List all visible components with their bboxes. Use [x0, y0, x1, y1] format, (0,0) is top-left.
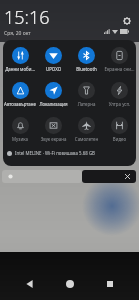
staticText: Intel MELINE · Wi-Fi повишава 5.68 GB	[15, 150, 95, 156]
staticText: Латерна	[71, 101, 102, 107]
button[interactable]: Музика	[3, 117, 37, 147]
button[interactable]: Екранна снимка	[103, 47, 136, 77]
button[interactable]: Close	[82, 170, 136, 183]
staticText: Автозавъртане	[4, 101, 36, 107]
button[interactable]: Recents	[98, 272, 122, 296]
button[interactable]: Локализация	[37, 82, 70, 112]
staticText: Музика	[4, 136, 36, 142]
staticText: Локализация	[38, 101, 69, 107]
staticText: Самолетен	[71, 136, 102, 142]
staticText: Bluetooth	[71, 66, 102, 72]
staticText: Екранна снимка	[104, 66, 135, 72]
button[interactable]: Settings	[120, 14, 134, 28]
staticText: 15:16	[4, 5, 50, 30]
button[interactable]: Home	[58, 272, 82, 296]
button[interactable]: UPOXO	[37, 47, 70, 77]
button[interactable]: Данни мобилни	[3, 47, 37, 77]
staticText: Видео	[104, 136, 135, 142]
staticText: Звук екрана	[38, 136, 69, 142]
button[interactable]: Видео	[103, 117, 136, 147]
button[interactable]: Автозавъртане	[3, 82, 37, 112]
button[interactable]: Самолетен	[70, 117, 103, 147]
button[interactable]: Notification	[2, 170, 82, 183]
staticText: Данни мобилни	[4, 66, 36, 72]
button[interactable]: Латерна	[70, 82, 103, 112]
button[interactable]: Bluetooth	[70, 47, 103, 77]
staticText: UPOXO	[38, 66, 69, 72]
staticText: Ултра усп.	[104, 101, 135, 107]
button[interactable]: Звук екрана	[37, 117, 70, 147]
button[interactable]: Ултра усп.	[103, 82, 136, 112]
button[interactable]: Back	[17, 272, 41, 296]
staticText: Сря, 20 окт	[4, 30, 31, 37]
